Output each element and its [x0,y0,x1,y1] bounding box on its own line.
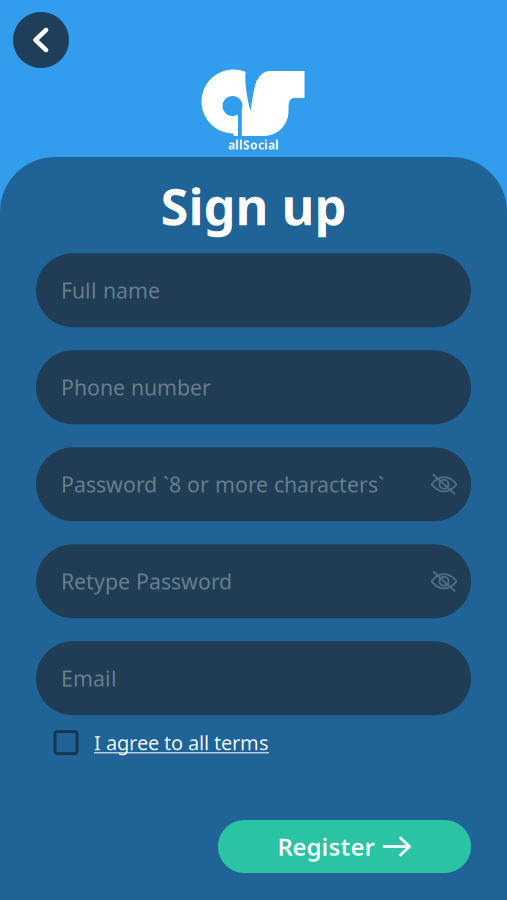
button[interactable]: Register [218,820,471,873]
button[interactable]: Retype Password [36,544,471,618]
staticText: Phone number [61,373,211,401]
button[interactable]: Phone number [36,350,471,424]
button[interactable]: I agree to all terms [0,715,507,756]
staticText: allSocial [228,137,279,153]
staticText: Register [277,831,374,862]
button[interactable]: Full name [36,253,471,327]
button[interactable]: Back [13,12,69,68]
button[interactable]: Email [36,641,471,715]
staticText: Retype Password [61,567,232,595]
staticText: Sign up [160,172,346,239]
staticText: Password `8 or more characters` [61,470,384,498]
staticText: Full name [61,276,160,304]
staticText: Email [61,664,117,692]
button[interactable]: Password `8 or more characters` [36,447,471,521]
staticText: I agree to all terms [94,729,269,756]
